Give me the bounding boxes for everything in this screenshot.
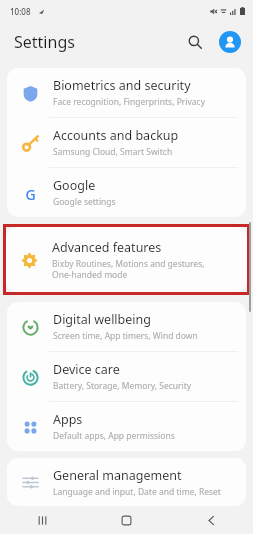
button[interactable]: G — [7, 168, 246, 217]
staticText: Google — [53, 177, 96, 194]
button[interactable]: Biometrics and security — [7, 68, 246, 117]
button[interactable]: Digital wellbeing — [7, 302, 246, 351]
button[interactable]: Advanced features — [6, 227, 247, 292]
staticText: Biometrics and security — [53, 77, 191, 94]
button[interactable]: Apps — [7, 402, 246, 451]
staticText: Language and input, Date and time, Reset — [53, 486, 221, 497]
staticText: Google settings — [53, 196, 116, 208]
button[interactable]: Recents — [25, 506, 59, 534]
staticText: Battery, Storage, Memory, Security — [53, 380, 192, 392]
staticText: Bixby Routines, Motions and gestures, On… — [52, 258, 205, 280]
button[interactable]: General management — [7, 458, 246, 506]
staticText: Apps — [53, 411, 83, 428]
staticText: Screen time, App timers, Wind down — [53, 330, 198, 342]
button[interactable]: Device care — [7, 352, 246, 401]
staticText: Advanced features — [52, 239, 162, 256]
button[interactable]: Home — [109, 506, 143, 534]
button[interactable]: Accounts and backup — [7, 118, 246, 167]
staticText: Samsung Cloud, Smart Switch — [53, 146, 173, 158]
staticText: Settings — [14, 31, 75, 53]
button[interactable]: Back — [194, 506, 228, 534]
button[interactable]: Account — [219, 31, 241, 53]
staticText: Face recognition, Fingerprints, Privacy — [53, 96, 205, 108]
staticText: Device care — [53, 361, 120, 378]
staticText: 10:08 — [10, 6, 31, 17]
staticText: Default apps, App permissions — [53, 430, 175, 442]
staticText: G — [25, 185, 36, 202]
staticText: General management — [53, 467, 182, 484]
button[interactable]: Search — [183, 30, 207, 54]
staticText: Digital wellbeing — [53, 311, 151, 328]
staticText: Accounts and backup — [53, 127, 179, 144]
